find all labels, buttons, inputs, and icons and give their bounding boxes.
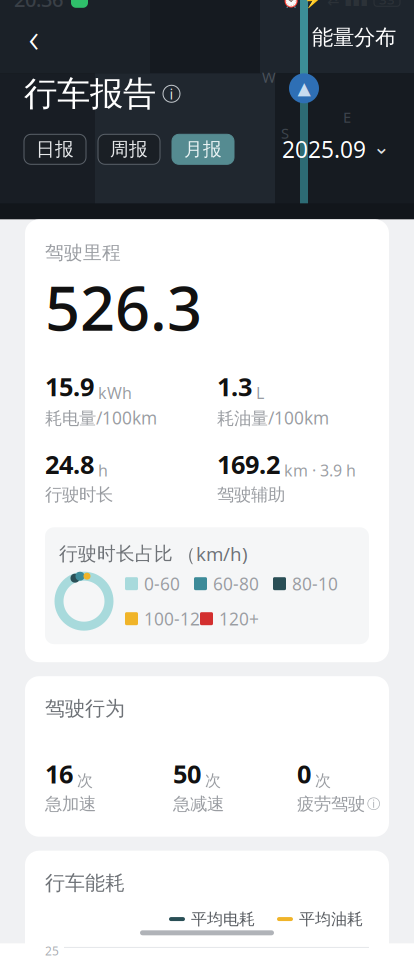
staticText: S [281,123,289,143]
button[interactable]: 能量分布 [306,15,402,59]
staticText: 169.2 [217,447,280,481]
button[interactable]: 疲劳驾驶 [297,793,380,815]
staticText: 驾驶行为 [45,696,125,721]
staticText: 日报 [36,138,74,161]
staticText: 行驶时长 [45,484,113,505]
staticText: ▲ [297,78,310,98]
button[interactable]: 周报 [98,134,160,164]
staticText: 行驶时长占比 [59,542,173,565]
button[interactable]: 月报 [172,134,234,164]
button[interactable]: 日报 [24,134,86,164]
staticText: 15.9 [45,370,94,403]
staticText: ‹ [28,11,39,64]
staticText: W [262,67,276,87]
staticText: 2025.09 [282,134,366,164]
staticText: km · 3.9 h [284,460,356,481]
staticText: 20:36 [14,0,63,13]
staticText: 耗油量/100km [217,406,329,429]
staticText: 周报 [110,138,148,161]
staticText: 疲劳驾驶 [297,793,365,815]
staticText: ⏰ ⚡ ⇄ [282,0,339,9]
staticText: 平均电耗 [191,909,255,929]
button[interactable]: Back [12,15,56,59]
staticText: kWh [98,382,132,403]
staticText: 25 [45,943,59,959]
staticText: 行车报告 [24,73,156,114]
staticText: 0-60 [144,572,180,595]
staticText: 月报 [184,138,222,161]
staticText: ⓘ [367,796,380,812]
staticText: E [343,107,351,127]
staticText: 100-12 [144,607,200,630]
staticText: 次 [315,771,331,790]
staticText: h [98,460,108,481]
staticText: ▮▮▮ [344,0,368,8]
staticText: （km/h) [177,541,248,566]
staticText: 平均油耗 [299,909,363,929]
staticText: 次 [77,771,93,790]
staticText: L [256,382,264,403]
staticText: 急加速 [45,793,96,815]
staticText: i [169,84,173,103]
staticText: 16 [45,757,73,790]
staticText: 80-10 [292,572,338,595]
staticText: 急减速 [173,793,224,815]
staticText: 60-80 [213,572,259,595]
staticText: 耗电量/100km [45,406,157,429]
staticText: 120+ [219,607,259,630]
button[interactable]: 2025.09 [282,134,390,164]
staticText: 驾驶里程 [45,241,121,264]
staticText: 50 [173,757,201,790]
staticText: 次 [205,771,221,790]
staticText: 行车能耗 [45,871,125,895]
staticText: ⌄ [373,135,390,158]
staticText: 0 [297,757,311,790]
staticText: 1.3 [217,370,252,403]
staticText: 驾驶辅助 [217,484,285,505]
button[interactable]: Info [163,85,180,102]
staticText: 526.3 [45,266,202,348]
staticText: 33 [379,0,395,8]
staticText: 24.8 [45,447,94,481]
staticText: 能量分布 [312,24,396,50]
